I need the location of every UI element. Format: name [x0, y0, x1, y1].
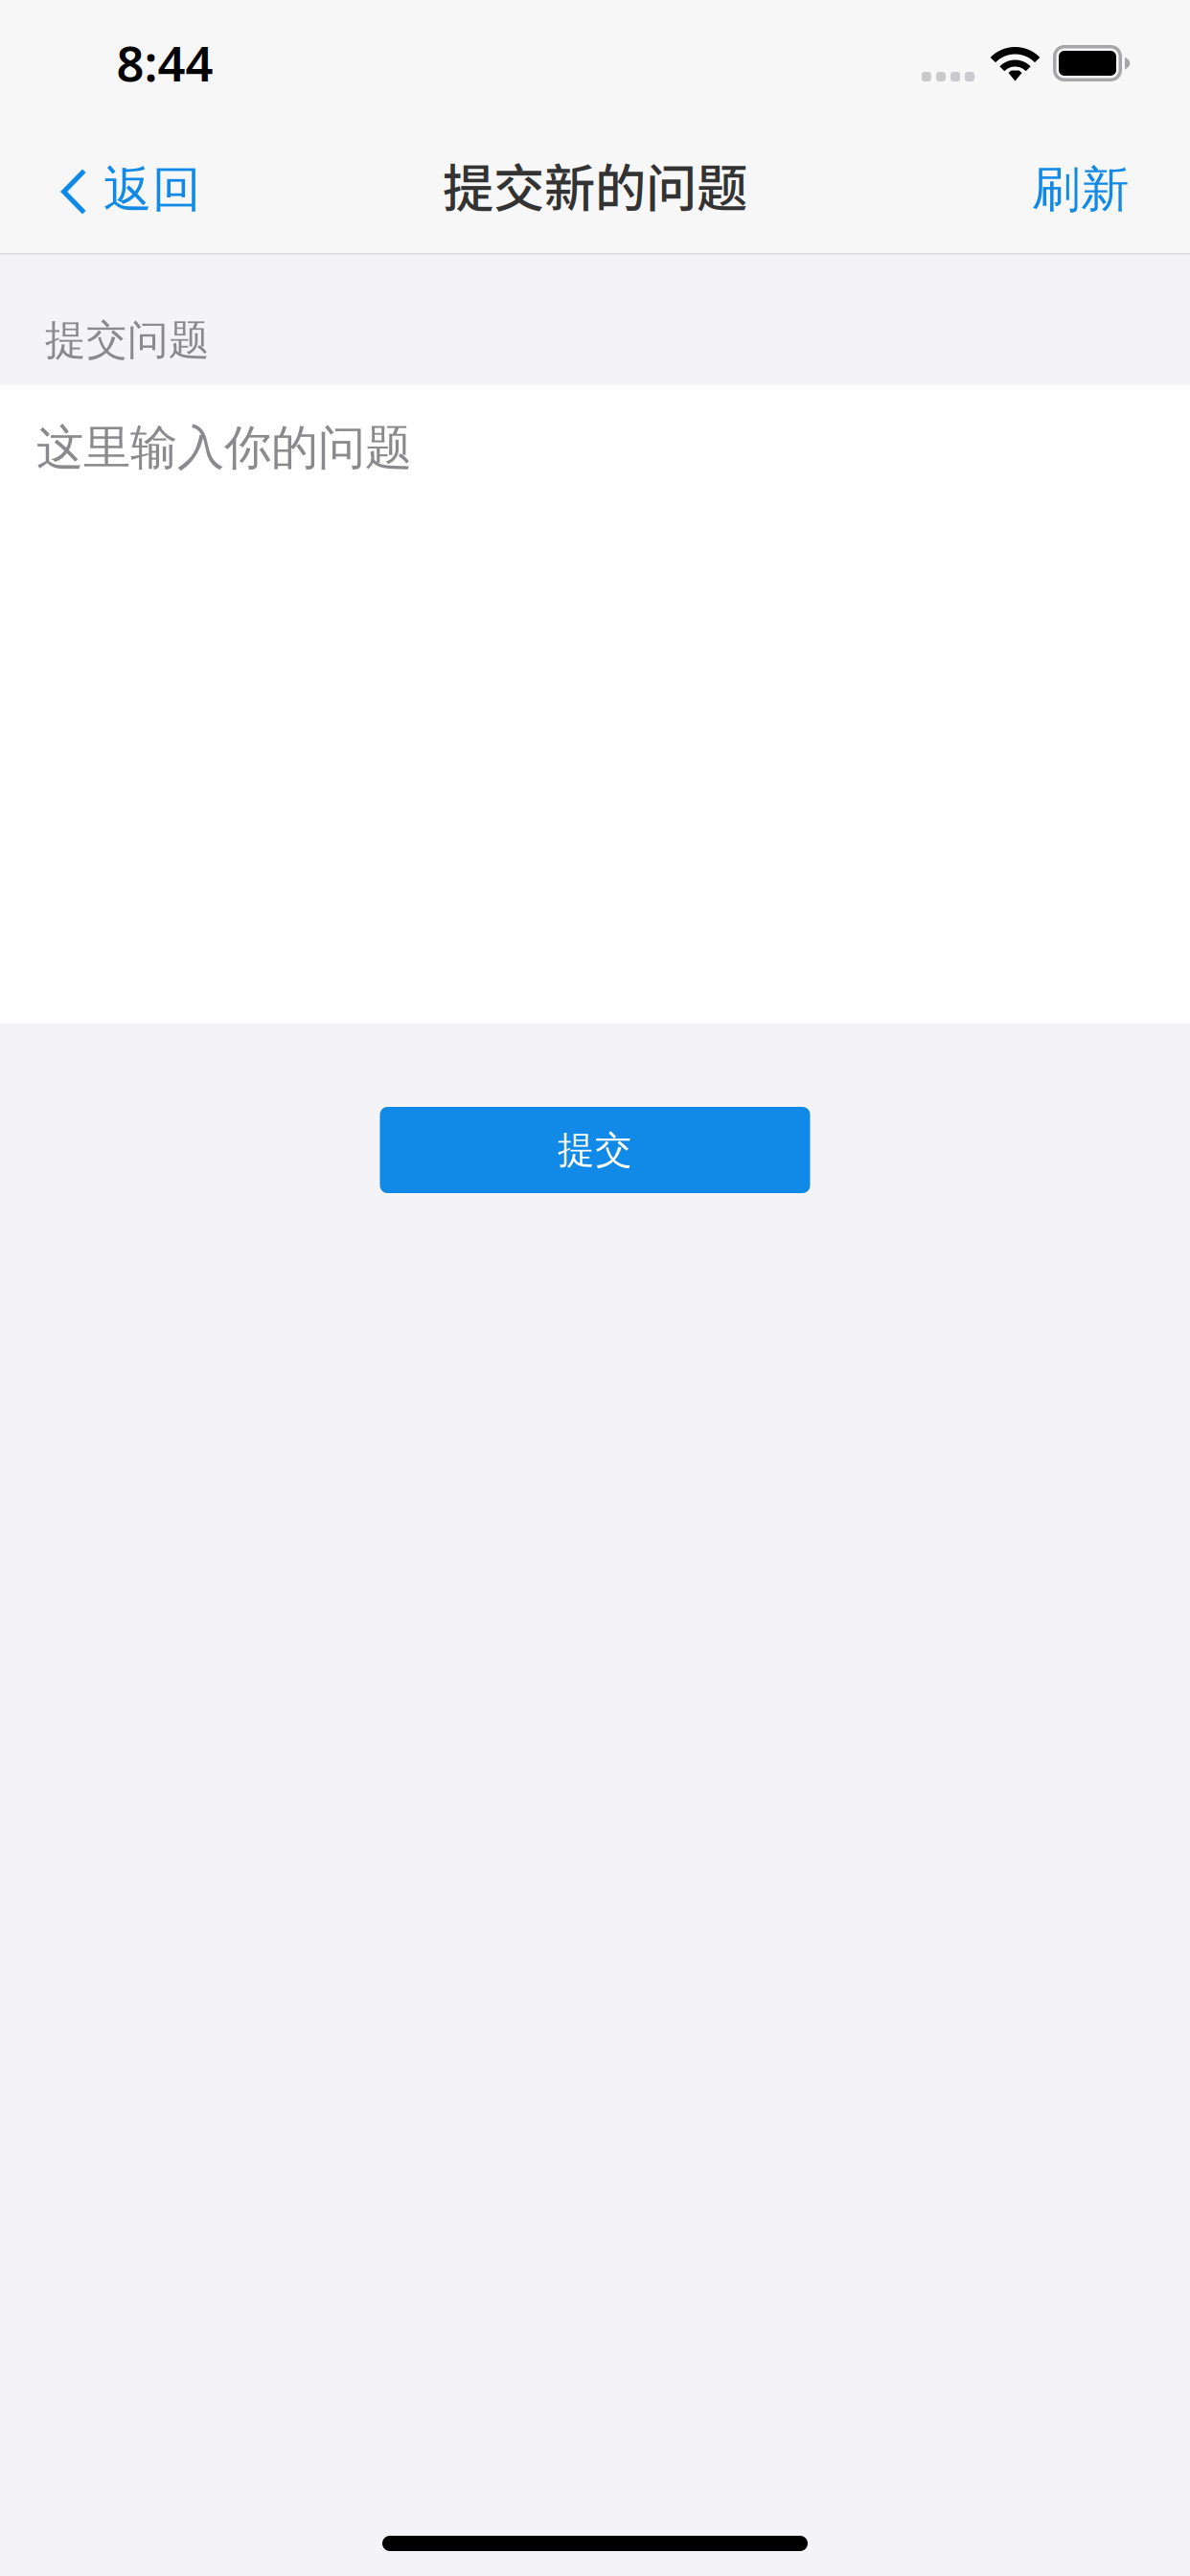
staticText: 返回: [103, 160, 201, 220]
button[interactable]: 刷新: [1009, 116, 1190, 242]
staticText: 提交: [558, 1127, 632, 1173]
staticText: 刷新: [1032, 160, 1130, 220]
staticText: 提交问题: [45, 315, 210, 365]
button[interactable]: 提交: [380, 1107, 810, 1193]
staticText: 提交新的问题: [443, 148, 747, 222]
button[interactable]: 返回: [0, 116, 224, 242]
button[interactable]: 这里输入你的问题: [0, 385, 1190, 1023]
staticText: 8:44: [116, 30, 213, 95]
staticText: 这里输入你的问题: [36, 419, 412, 477]
